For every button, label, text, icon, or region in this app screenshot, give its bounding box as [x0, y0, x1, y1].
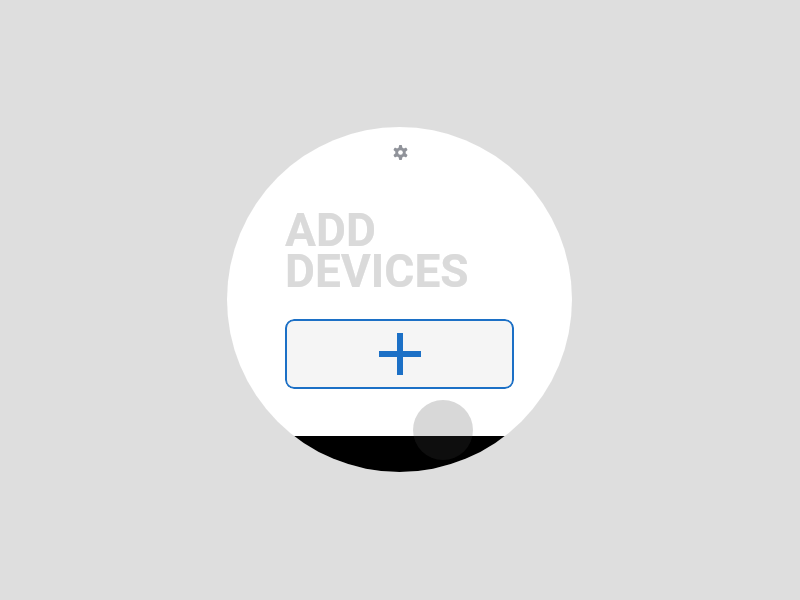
staticText: ADD — [285, 203, 376, 257]
button[interactable]: Action — [413, 400, 473, 460]
staticText: DEVICES — [285, 244, 469, 298]
button[interactable]: Settings — [393, 145, 408, 160]
button[interactable]: Add device — [285, 319, 514, 389]
